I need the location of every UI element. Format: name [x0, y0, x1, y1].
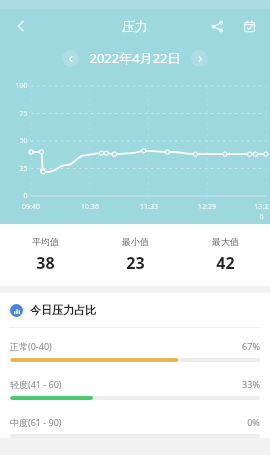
- button[interactable]: 轻度(41 - 60): [0, 378, 270, 400]
- staticText: 25: [19, 164, 28, 174]
- button[interactable]: 正常(0-40): [0, 340, 270, 362]
- staticText: 中度(61 - 90): [10, 416, 247, 428]
- button[interactable]: Back: [6, 11, 36, 41]
- staticText: 正常(0-40): [10, 340, 242, 352]
- staticText: 12:29: [198, 202, 216, 212]
- staticText: 75: [19, 109, 28, 119]
- staticText: 38: [36, 252, 55, 274]
- staticText: 50: [19, 136, 28, 146]
- staticText: 09:40: [22, 202, 40, 212]
- staticText: 最小值: [122, 236, 149, 247]
- button[interactable]: 中度(61 - 90): [0, 416, 270, 438]
- staticText: 67%: [242, 340, 260, 352]
- staticText: 13:26: [253, 202, 270, 222]
- staticText: 10:36: [81, 202, 99, 212]
- staticText: 最大值: [212, 236, 239, 247]
- staticText: 33%: [242, 378, 260, 390]
- staticText: 2022年4月22日: [89, 49, 181, 67]
- staticText: 今日压力占比: [30, 303, 96, 317]
- button[interactable]: 最小值: [90, 236, 180, 274]
- button[interactable]: Next day: [191, 50, 208, 67]
- staticText: 压力: [122, 18, 148, 34]
- staticText: 23: [126, 252, 145, 274]
- staticText: 0%: [247, 416, 260, 428]
- button[interactable]: Calendar: [236, 13, 262, 39]
- button[interactable]: Share: [204, 13, 230, 39]
- button[interactable]: 最大值: [180, 236, 270, 274]
- button[interactable]: Previous day: [62, 50, 79, 67]
- staticText: 42: [216, 252, 235, 274]
- staticText: 0: [23, 191, 28, 201]
- button[interactable]: 平均值: [0, 236, 90, 274]
- staticText: 轻度(41 - 60): [10, 378, 242, 390]
- button[interactable]: 今日压力占比: [0, 293, 270, 327]
- staticText: 平均值: [32, 236, 59, 247]
- staticText: 100: [15, 81, 28, 91]
- staticText: 11:33: [140, 202, 158, 212]
